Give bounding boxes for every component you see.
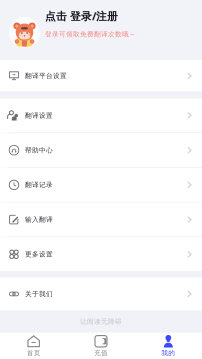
staticText: 更多设置 bbox=[25, 250, 53, 258]
staticText: 关于我们 bbox=[25, 290, 53, 298]
button[interactable]: 首页 bbox=[0, 333, 67, 359]
button[interactable]: 我的 bbox=[135, 333, 202, 359]
staticText: 点击 登录/注册 bbox=[45, 9, 118, 23]
staticText: 翻译记录 bbox=[25, 181, 53, 189]
button[interactable]: 关于我们 bbox=[0, 277, 202, 311]
button[interactable]: 充值 bbox=[67, 333, 135, 359]
button[interactable]: 翻译设置 bbox=[0, 98, 202, 132]
button[interactable]: 翻译记录 bbox=[0, 168, 202, 202]
staticText: 首页 bbox=[27, 349, 41, 357]
button[interactable]: 输入翻译 bbox=[0, 203, 202, 237]
staticText: 翻译平台设置 bbox=[25, 72, 67, 80]
staticText: 充值 bbox=[94, 349, 108, 357]
staticText: 登录可领取免费翻译次数哦～ bbox=[45, 30, 136, 38]
button[interactable]: 翻译平台设置 bbox=[0, 60, 202, 92]
staticText: 让阅读无障碍 bbox=[80, 317, 122, 326]
staticText: 翻译设置 bbox=[25, 111, 53, 120]
staticText: 输入翻译 bbox=[25, 215, 53, 224]
staticText: 帮助中心 bbox=[25, 146, 53, 154]
staticText: 我的 bbox=[161, 349, 175, 357]
button[interactable]: 点击 登录/注册 bbox=[0, 0, 202, 60]
button[interactable]: 更多设置 bbox=[0, 237, 202, 271]
button[interactable]: 帮助中心 bbox=[0, 133, 202, 167]
